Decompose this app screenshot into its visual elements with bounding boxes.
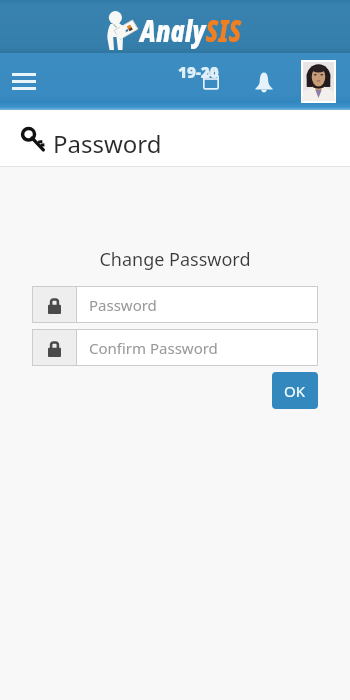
button[interactable]: Confirm Password [32, 329, 318, 366]
staticText: SIS [205, 9, 242, 50]
staticText: Password [89, 295, 157, 315]
button[interactable]: Notifications [244, 61, 284, 101]
button[interactable]: Password [32, 286, 318, 323]
staticText: Change Password [0, 247, 350, 272]
staticText: Analy [140, 9, 205, 50]
staticText: Confirm Password [89, 338, 218, 358]
staticText: OK [284, 381, 306, 401]
staticText: Password [53, 127, 162, 160]
button[interactable]: Open navigation menu [2, 59, 46, 103]
staticText: 19-20 [178, 62, 219, 82]
button[interactable]: OK [272, 372, 318, 409]
button[interactable]: Profile photo [301, 60, 336, 103]
button[interactable]: Academic year 19-20 [174, 65, 220, 99]
